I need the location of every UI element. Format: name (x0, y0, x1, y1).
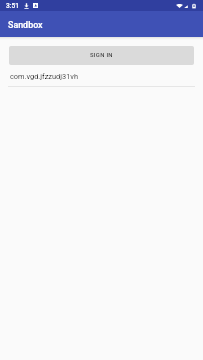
other: Wi-Fi (176, 3, 183, 9)
staticText: com.vgd.jfzzudj31vh (10, 72, 78, 81)
button[interactable]: SIGN IN (9, 46, 194, 65)
other: Notification (33, 3, 38, 8)
other: Battery (192, 3, 196, 9)
other: Cellular signal (184, 3, 188, 9)
other: Download (24, 3, 29, 9)
button[interactable]: com.vgd.jfzzudj31vh (0, 65, 203, 86)
staticText: 3:51 (6, 2, 19, 10)
staticText: Sandbox (8, 20, 43, 30)
staticText: SIGN IN (90, 52, 113, 59)
